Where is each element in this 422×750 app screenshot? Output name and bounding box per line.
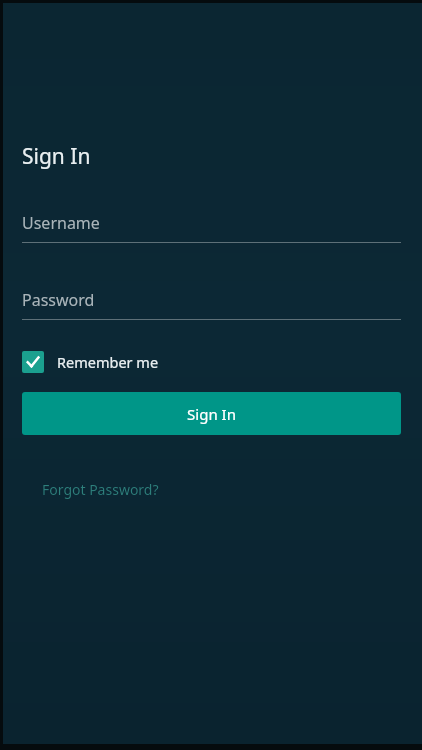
button[interactable]: Sign In: [22, 392, 401, 435]
staticText: Username: [22, 212, 100, 234]
button[interactable]: Remember me checkbox, checked: [22, 349, 169, 375]
button[interactable]: Password: [22, 289, 401, 320]
staticText: Remember me: [57, 352, 159, 372]
staticText: Sign In: [22, 142, 91, 171]
staticText: Password: [22, 289, 95, 311]
button[interactable]: Forgot Password?: [36, 476, 165, 503]
button[interactable]: Username: [22, 212, 401, 243]
staticText: Sign In: [187, 404, 236, 424]
staticText: Forgot Password?: [42, 480, 159, 499]
other: Remember me checkbox, checked: [22, 351, 44, 373]
